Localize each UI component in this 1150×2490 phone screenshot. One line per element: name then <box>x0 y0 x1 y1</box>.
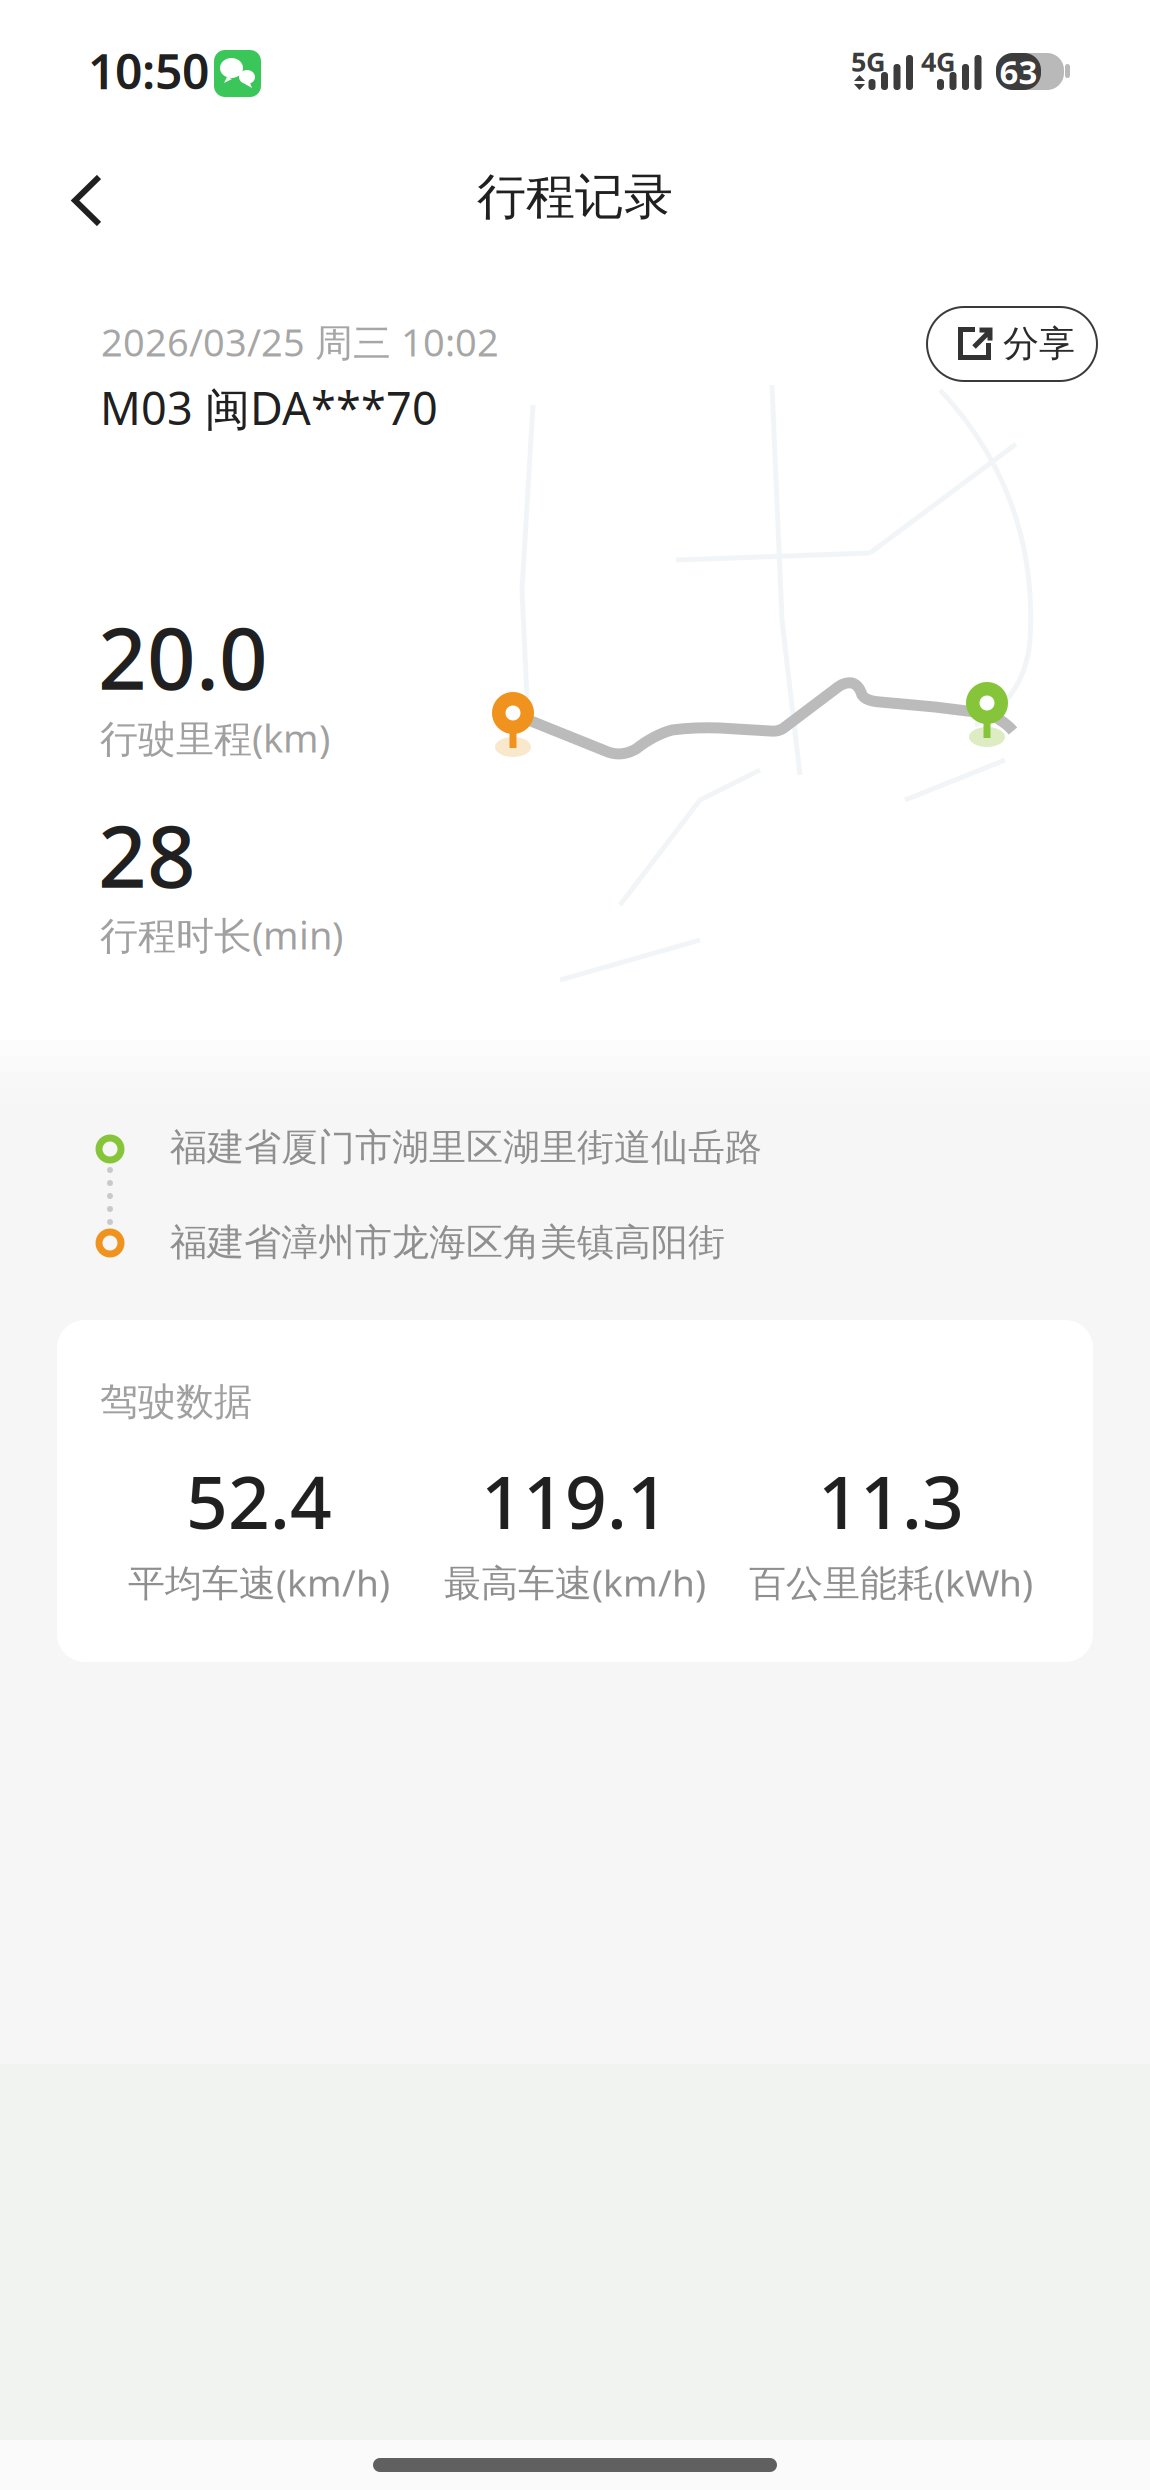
staticText: 28 <box>98 797 196 913</box>
staticText: 百公里能耗(kWh) <box>749 1557 1033 1607</box>
staticText: 分享 <box>1003 321 1075 366</box>
staticText: 行驶里程(km) <box>100 712 330 764</box>
staticText: 福建省漳州市龙海区角美镇高阳街 <box>170 1219 725 1266</box>
staticText: 行程记录 <box>477 166 673 228</box>
staticText: 20.0 <box>98 599 268 715</box>
staticText: 5G <box>851 43 886 80</box>
button[interactable]: Share <box>927 307 1097 381</box>
staticText: 52.4 <box>186 1451 332 1550</box>
staticText: 63 <box>999 49 1037 94</box>
staticText: 最高车速(km/h) <box>444 1557 706 1607</box>
staticText: 11.3 <box>818 1451 964 1550</box>
staticText: 2026/03/25 周三 10:02 <box>101 316 499 368</box>
staticText: 驾驶数据 <box>100 1378 252 1426</box>
staticText: 119.1 <box>481 1451 669 1550</box>
staticText: 福建省厦门市湖里区湖里街道仙岳路 <box>170 1124 762 1171</box>
staticText: 10:50 <box>88 38 209 103</box>
staticText: 4G <box>921 43 956 80</box>
staticText: 平均车速(km/h) <box>128 1557 390 1607</box>
staticText: M03 闽DA***70 <box>100 377 438 438</box>
button[interactable]: Back <box>0 0 105 227</box>
staticText: 行程时长(min) <box>100 909 343 961</box>
